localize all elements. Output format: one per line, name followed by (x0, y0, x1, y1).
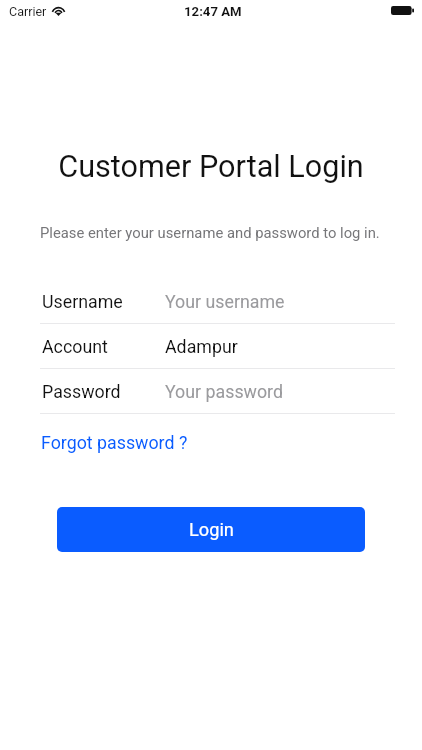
staticText: Forgot password ? (41, 432, 188, 453)
staticText: Adampur (165, 336, 238, 357)
staticText: Please enter your username and password … (40, 224, 380, 241)
other: Wi-Fi signal (52, 7, 65, 17)
button[interactable]: Login (57, 507, 365, 552)
button[interactable]: Account (0, 323, 422, 368)
staticText: Password (42, 381, 121, 402)
staticText: Your username (165, 291, 285, 312)
button[interactable]: Username (0, 278, 422, 323)
button[interactable]: Forgot password ? (41, 429, 188, 456)
staticText: Username (42, 291, 123, 312)
staticText: Your password (165, 381, 283, 402)
staticText: Customer Portal Login (0, 149, 422, 185)
button[interactable]: Password (0, 368, 422, 413)
staticText: 12:47 AM (184, 4, 242, 19)
staticText: Account (42, 336, 108, 357)
other: Battery full (391, 6, 414, 15)
staticText: Login (189, 519, 234, 540)
staticText: Carrier (9, 4, 47, 19)
